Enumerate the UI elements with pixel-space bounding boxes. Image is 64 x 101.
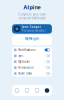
button[interactable]: Share Data <box>12 71 52 76</box>
button[interactable]: Profile <box>42 85 52 96</box>
button[interactable]: Activity <box>22 85 32 96</box>
button[interactable]: Notifications <box>12 47 52 53</box>
button[interactable]: Reminders <box>12 65 52 71</box>
button[interactable]: Sync <box>12 53 52 59</box>
button[interactable]: My Weight <box>12 35 52 46</box>
button[interactable]: My Goals <box>12 59 52 65</box>
staticText: Share Data <box>18 72 31 75</box>
staticText: Reminders <box>18 66 33 69</box>
staticText: Sync <box>18 54 23 57</box>
staticText: My Goals <box>18 60 29 63</box>
staticText: Jane Cooper <box>22 25 41 29</box>
button[interactable]: Stats <box>32 85 42 96</box>
staticText: Premium member <box>22 29 46 33</box>
staticText: personal dashboard <box>18 16 45 20</box>
staticText: Complete your own <box>18 13 46 16</box>
staticText: My Weight <box>25 37 39 41</box>
button[interactable]: Home <box>12 85 22 96</box>
button[interactable]: Jane Cooper <box>12 24 52 34</box>
staticText: Alpine <box>23 4 40 11</box>
staticText: Notifications <box>18 48 35 52</box>
